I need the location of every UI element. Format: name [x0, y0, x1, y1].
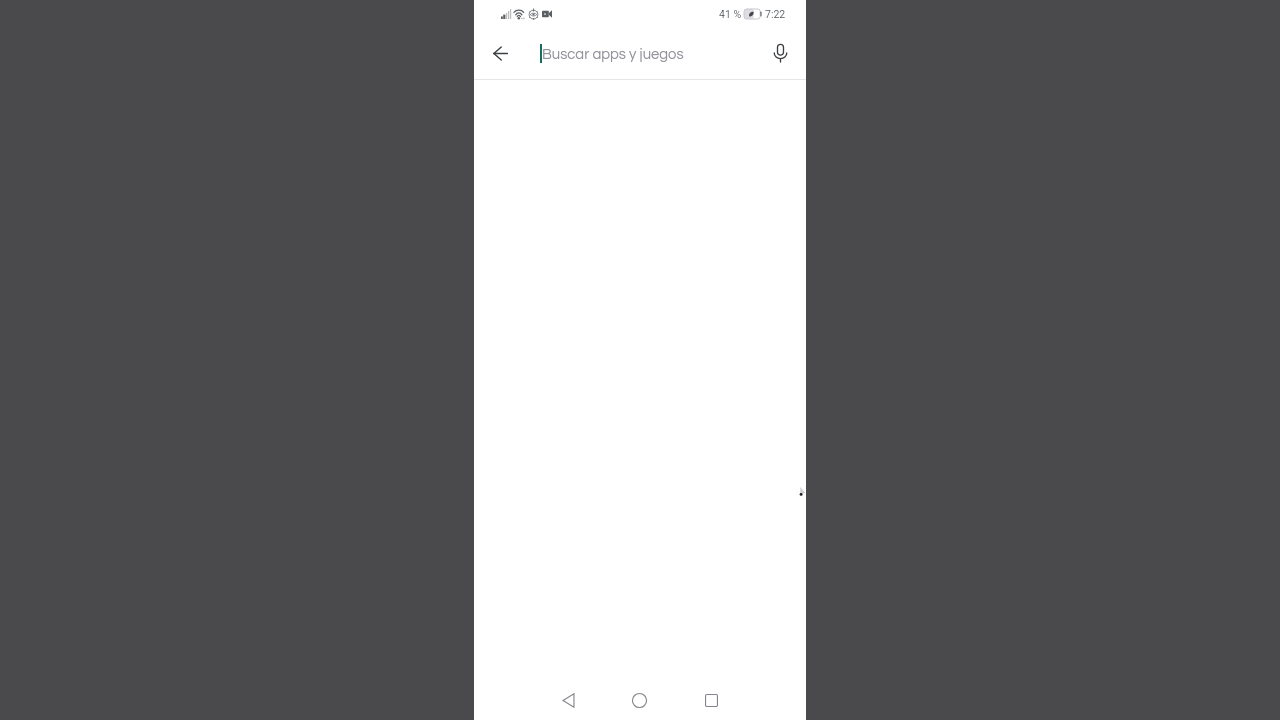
- button[interactable]: Home: [615, 676, 663, 720]
- button[interactable]: Buscar apps y juegos: [526, 28, 756, 79]
- button[interactable]: Back: [544, 676, 592, 720]
- staticText: Buscar apps y juegos: [542, 47, 684, 62]
- staticText: 41 %: [719, 8, 742, 20]
- button[interactable]: Recents: [687, 676, 735, 720]
- staticText: 7:22: [765, 8, 786, 20]
- button[interactable]: Voice search: [760, 33, 800, 73]
- button[interactable]: Back: [480, 33, 520, 73]
